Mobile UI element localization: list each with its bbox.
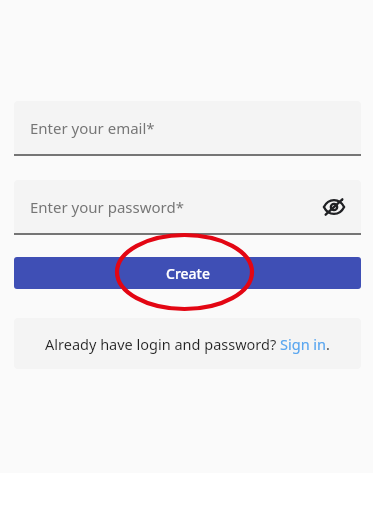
button[interactable]: Show password [317, 190, 351, 224]
button[interactable]: Enter your password* [14, 180, 361, 233]
button[interactable]: Enter your email* [14, 101, 361, 156]
staticText: Create [166, 264, 210, 283]
button[interactable]: Already have login and password? Sign in… [14, 318, 361, 369]
button[interactable]: Create [14, 257, 361, 289]
staticText: Enter your email* [30, 118, 155, 138]
staticText: Enter your password* [30, 197, 184, 217]
staticText: Already have login and password? Sign in… [45, 334, 330, 354]
